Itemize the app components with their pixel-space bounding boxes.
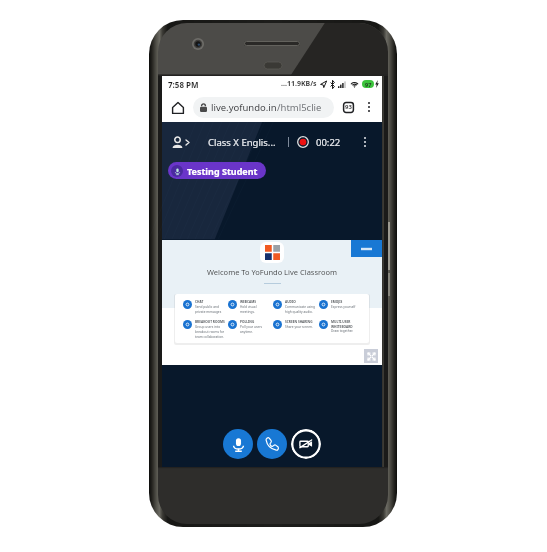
button[interactable]: Testing Student (168, 162, 266, 179)
staticText: Hold visual meetings. (240, 305, 270, 313)
staticText: Draw together. (331, 329, 354, 333)
button[interactable]: Menu (351, 240, 382, 257)
staticText: Poll your users anytime. (240, 325, 270, 333)
staticText: Express yourself (331, 305, 356, 309)
staticText: 97 (365, 81, 372, 88)
staticText: 93 (345, 103, 352, 111)
button[interactable]: Participants (171, 136, 190, 149)
button[interactable]: live.yofundo.in (193, 97, 334, 118)
staticText: WEBCAMS (240, 300, 257, 304)
staticText: 00:22 (316, 136, 341, 149)
button[interactable]: Leave audio (257, 429, 287, 459)
button[interactable]: Tabs (340, 99, 356, 115)
staticText: live.yofundo.in (211, 101, 277, 114)
button[interactable]: More options (361, 99, 377, 115)
staticText: AUDIO (285, 300, 296, 304)
staticText: Share your screen. (285, 325, 313, 329)
staticText: POLLING (240, 320, 255, 324)
staticText: /html5clie (277, 101, 322, 114)
staticText: Class X Englis... (208, 136, 276, 149)
button[interactable]: Mute microphone (223, 429, 253, 459)
staticText: Communicate using high quality audio. (285, 305, 316, 313)
button[interactable]: Fullscreen (364, 349, 378, 363)
button[interactable]: Home (169, 99, 186, 116)
staticText: CHAT (195, 300, 204, 304)
staticText: Testing Student (187, 165, 258, 177)
staticText: SCREEN SHARING (285, 320, 313, 324)
staticText: 7:58 PM (168, 79, 199, 90)
staticText: ...11.9KB/s (281, 79, 317, 89)
staticText: EMOJIS (331, 300, 343, 304)
staticText: Group users into breakout rooms for team… (195, 325, 225, 338)
button[interactable]: Share webcam (291, 429, 321, 459)
staticText: Send public and private messages (195, 305, 225, 313)
staticText: BREAKOUT ROOMS (195, 320, 225, 324)
staticText: Welcome To YoFundo Live Classroom (207, 267, 338, 277)
button[interactable]: More (357, 134, 373, 150)
staticText: MULTI-USER WHITEBOARD (331, 320, 362, 328)
